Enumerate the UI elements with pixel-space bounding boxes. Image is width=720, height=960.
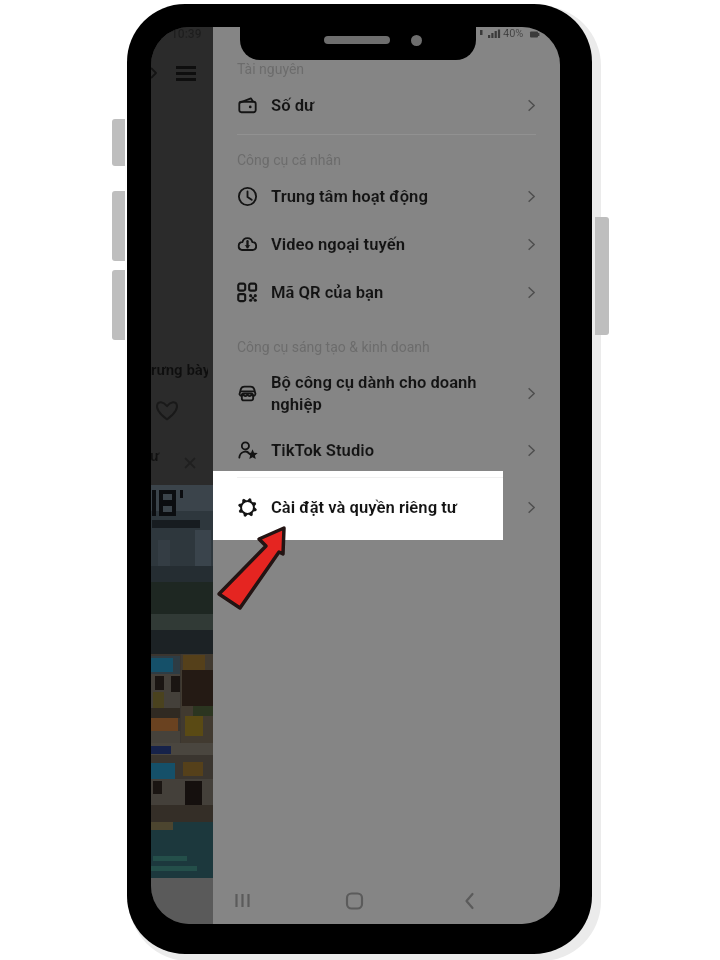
staticText: trưng bày: [151, 361, 208, 379]
staticText: Công cụ sáng tạo & kinh doanh: [237, 339, 430, 355]
staticText: TikTok Studio: [271, 441, 374, 460]
button[interactable]: TikTok Studio: [213, 429, 560, 471]
button[interactable]: Bộ công cụ dành cho doanh nghiệp: [213, 366, 560, 420]
staticText: Video ngoại tuyến: [271, 235, 405, 254]
button[interactable]: Mã QR của bạn: [213, 271, 560, 313]
staticText: Tài nguyên: [237, 61, 305, 77]
button[interactable]: Recents: [215, 877, 271, 924]
button[interactable]: Cài đặt và quyền riêng tư: [213, 486, 560, 528]
staticText: Trung tâm hoạt động: [271, 187, 428, 206]
button[interactable]: Video ngoại tuyến: [213, 223, 560, 265]
staticText: Cài đặt và quyền riêng tư: [271, 498, 457, 517]
staticText: 10:39: [171, 27, 202, 41]
button[interactable]: Số dư: [213, 84, 560, 126]
button[interactable]: Trung tâm hoạt động: [213, 175, 560, 217]
staticText: Bộ công cụ dành cho doanh nghiệp: [271, 373, 496, 414]
staticText: ư: [151, 447, 160, 465]
staticText: Công cụ cá nhân: [237, 152, 341, 168]
staticText: Mã QR của bạn: [271, 283, 384, 302]
button[interactable]: Back: [442, 877, 498, 924]
staticText: 40%: [503, 27, 524, 40]
button[interactable]: [213, 471, 503, 540]
staticText: Số dư: [271, 96, 315, 115]
button[interactable]: Home: [327, 877, 383, 924]
